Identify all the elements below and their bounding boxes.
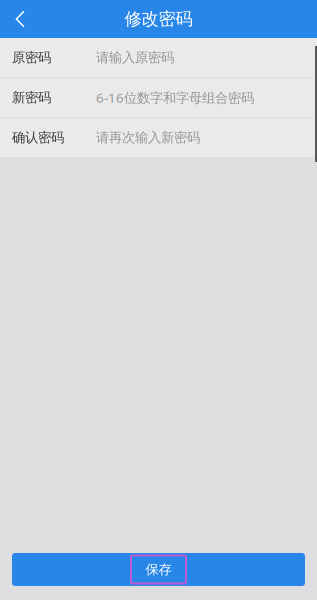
staticText: 6-16位数字和字母组合密码 — [96, 89, 254, 106]
staticText: 原密码 — [12, 49, 51, 66]
staticText: 修改密码 — [124, 8, 192, 30]
staticText: 确认密码 — [12, 129, 64, 146]
staticText: 新密码 — [12, 89, 51, 106]
button[interactable]: 保存 — [12, 553, 305, 586]
button[interactable]: Back — [0, 0, 54, 38]
staticText: 请再次输入新密码 — [96, 129, 200, 146]
staticText: 保存 — [145, 561, 171, 578]
staticText: 请输入原密码 — [96, 49, 174, 66]
